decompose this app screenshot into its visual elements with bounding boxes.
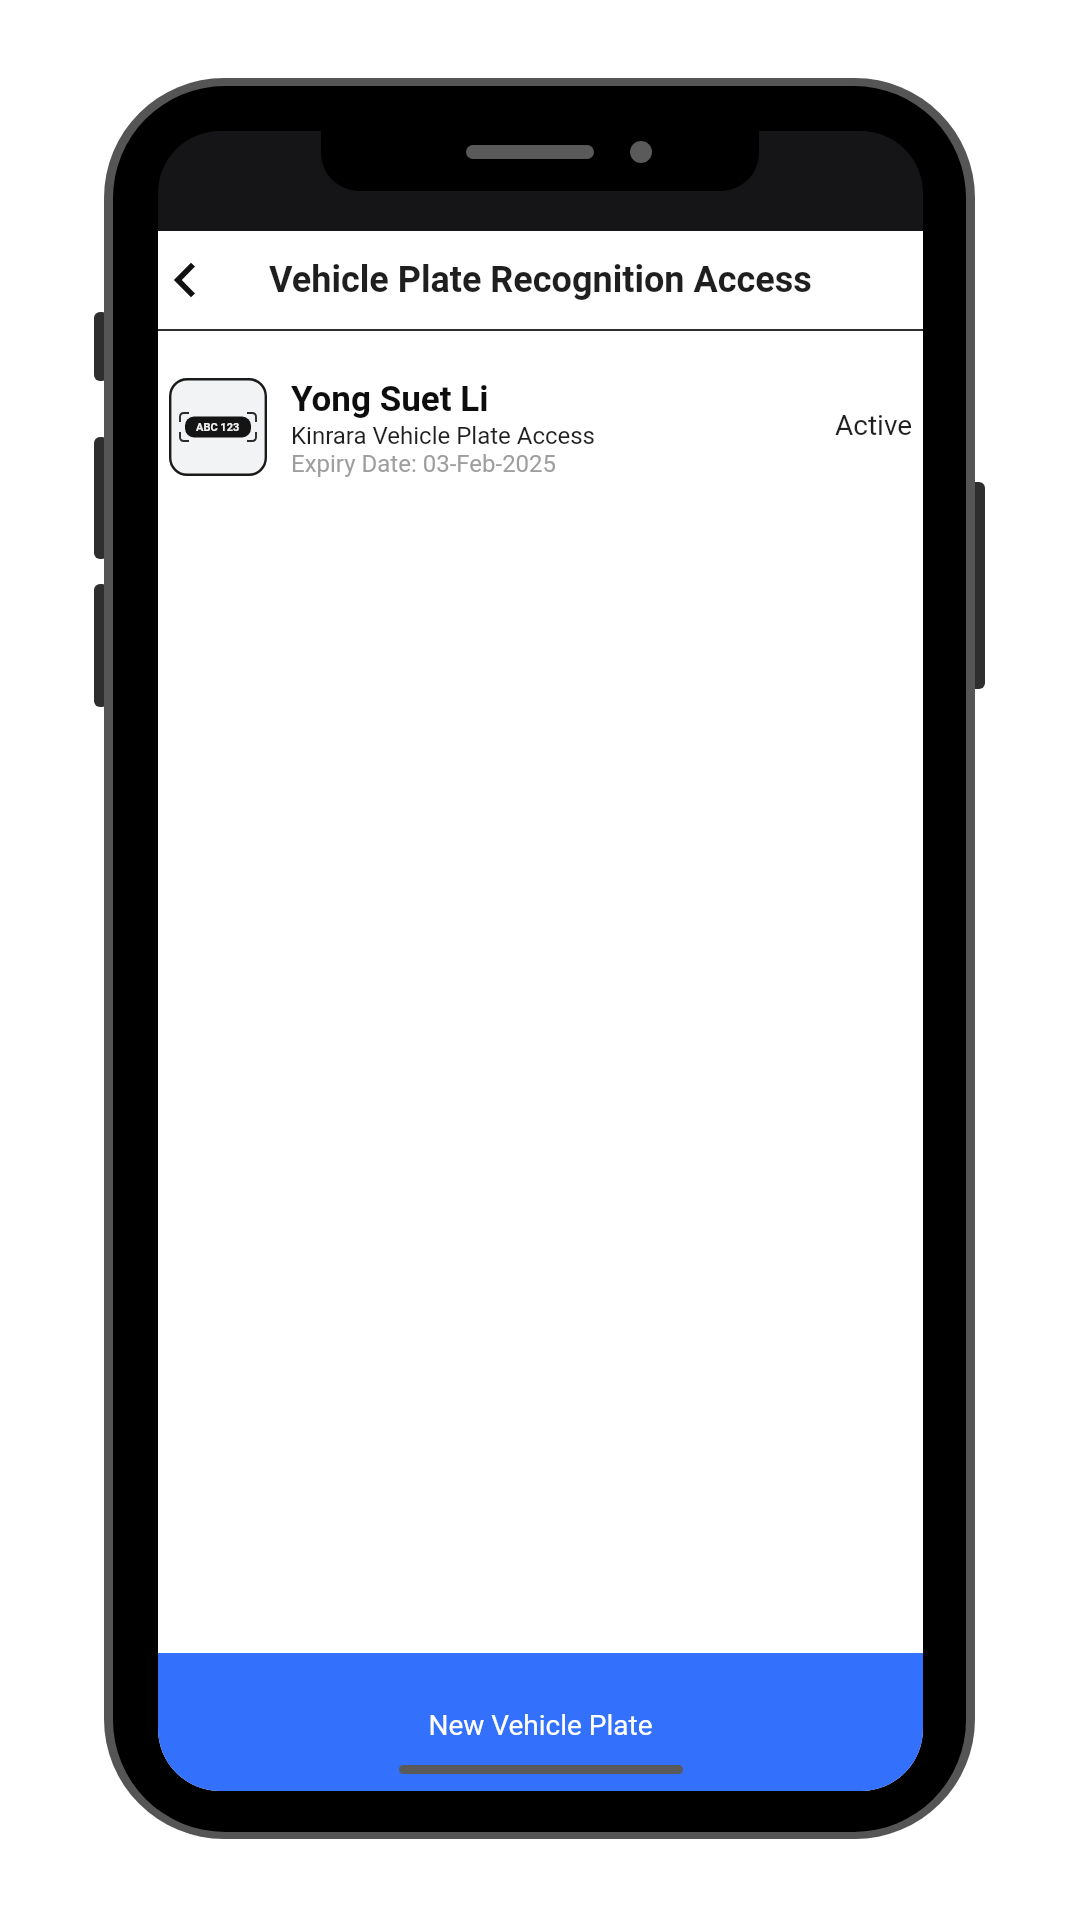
button[interactable]: New Vehicle Plate bbox=[158, 1653, 923, 1791]
staticText: ABC 123 bbox=[196, 421, 240, 434]
staticText: Vehicle Plate Recognition Access bbox=[269, 259, 812, 301]
staticText: Active bbox=[835, 409, 913, 442]
staticText: New Vehicle Plate bbox=[428, 1709, 653, 1742]
button[interactable]: ABC 123 bbox=[158, 331, 923, 523]
button[interactable]: Back bbox=[160, 252, 216, 308]
staticText: Kinrara Vehicle Plate Access bbox=[291, 422, 596, 450]
staticText: Expiry Date: 03-Feb-2025 bbox=[291, 450, 557, 478]
staticText: Yong Suet Li bbox=[291, 379, 489, 420]
